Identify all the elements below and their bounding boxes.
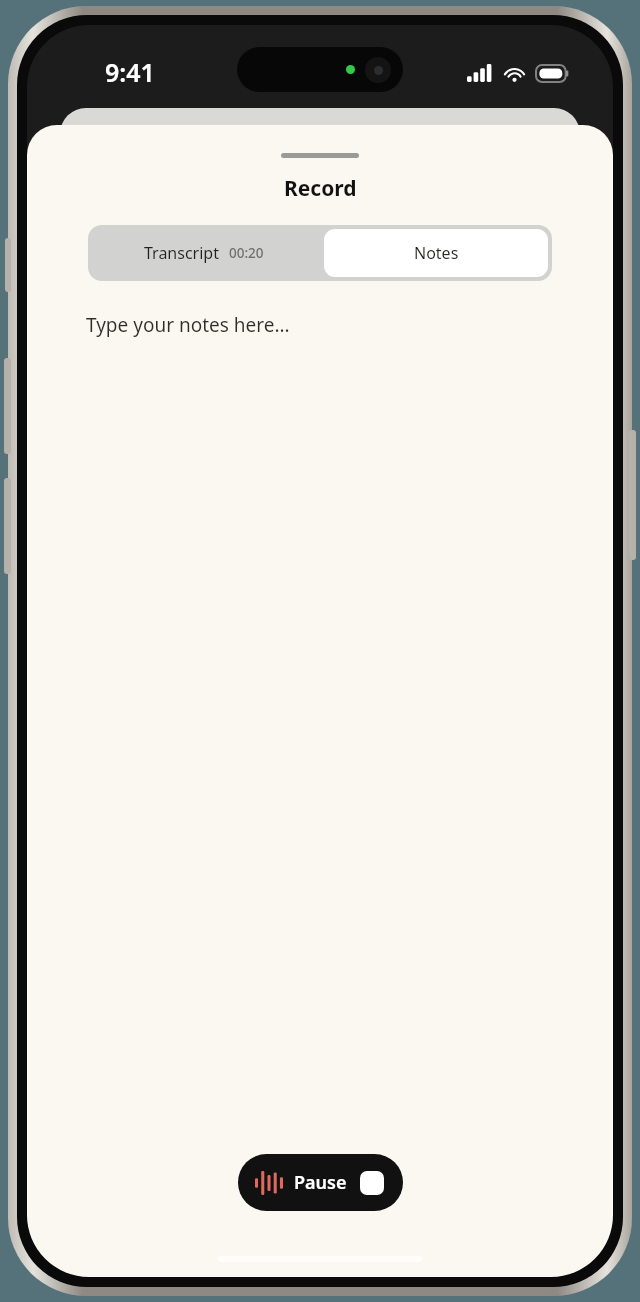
- staticText: 9:41: [105, 55, 155, 89]
- staticText: Type your notes here...: [86, 312, 290, 338]
- button[interactable]: Pause: [238, 1154, 403, 1211]
- other: Stop recording: [360, 1171, 384, 1195]
- staticText: 00:20: [229, 244, 264, 262]
- staticText: Pause: [294, 1170, 347, 1195]
- staticText: Transcript: [144, 242, 219, 264]
- staticText: Record: [284, 174, 357, 203]
- staticText: Notes: [414, 242, 459, 264]
- button[interactable]: Transcript: [88, 225, 320, 281]
- button[interactable]: Notes: [324, 229, 548, 277]
